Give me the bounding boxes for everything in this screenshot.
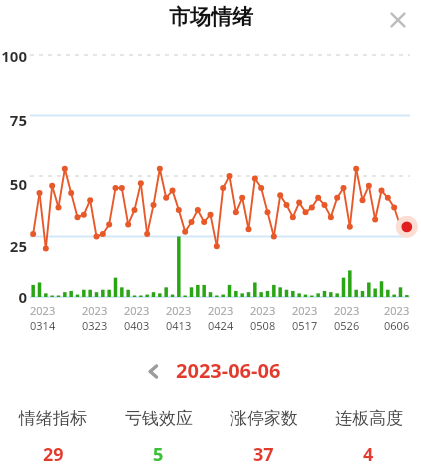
staticText: 涨停家数 bbox=[230, 408, 298, 429]
button[interactable]: 涨停家数 bbox=[211, 408, 316, 467]
staticText: 4 bbox=[363, 442, 374, 467]
staticText: 37 bbox=[253, 442, 274, 467]
button[interactable]: Close bbox=[381, 3, 415, 37]
staticText: 2023 bbox=[124, 303, 150, 318]
staticText: 2023 bbox=[30, 303, 56, 318]
staticText: 0526 bbox=[334, 318, 360, 333]
staticText: 连板高度 bbox=[335, 408, 403, 429]
staticText: 0314 bbox=[30, 318, 56, 333]
staticText: 0424 bbox=[208, 318, 234, 333]
staticText: 5 bbox=[153, 442, 164, 467]
staticText: 25 bbox=[0, 236, 27, 256]
button[interactable]: 亏钱效应 bbox=[106, 408, 211, 467]
staticText: 0606 bbox=[384, 318, 410, 333]
button[interactable]: 情绪指标 bbox=[0, 408, 106, 467]
staticText: 0323 bbox=[82, 318, 108, 333]
staticText: 2023 bbox=[166, 303, 192, 318]
staticText: 2023-06-06 bbox=[176, 357, 281, 384]
staticText: 50 bbox=[0, 174, 27, 194]
staticText: 2023 bbox=[292, 303, 318, 318]
staticText: 0 bbox=[0, 287, 27, 307]
button[interactable]: Previous day bbox=[140, 358, 166, 384]
staticText: 29 bbox=[43, 442, 64, 467]
staticText: 100 bbox=[0, 46, 27, 66]
staticText: 亏钱效应 bbox=[125, 408, 193, 429]
staticText: 2023 bbox=[82, 303, 108, 318]
button[interactable]: 2023-06-06 bbox=[176, 357, 281, 384]
staticText: 75 bbox=[0, 110, 27, 130]
staticText: 2023 bbox=[334, 303, 360, 318]
staticText: 2023 bbox=[384, 303, 410, 318]
staticText: 2023 bbox=[208, 303, 234, 318]
staticText: 0508 bbox=[250, 318, 276, 333]
staticText: 2023 bbox=[250, 303, 276, 318]
staticText: 0413 bbox=[166, 318, 192, 333]
staticText: 0517 bbox=[292, 318, 318, 333]
staticText: 情绪指标 bbox=[19, 408, 87, 429]
staticText: 市场情绪 bbox=[169, 4, 253, 30]
staticText: 0403 bbox=[124, 318, 150, 333]
button[interactable]: 连板高度 bbox=[316, 408, 421, 467]
